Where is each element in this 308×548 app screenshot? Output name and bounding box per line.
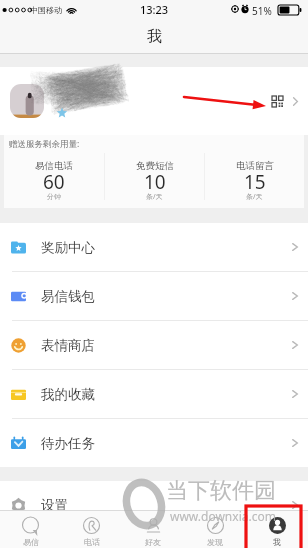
staticText: 奖励中心	[41, 239, 95, 256]
staticText: 13:23	[140, 2, 169, 17]
staticText: 易信电话	[35, 160, 73, 172]
staticText: www.downxia.com	[170, 508, 276, 524]
button[interactable]: QR code	[0, 67, 308, 135]
button[interactable]: QR code	[272, 96, 283, 107]
staticText: 条/天	[146, 192, 163, 202]
button[interactable]: 易信	[0, 511, 61, 548]
staticText: 赠送服务剩余用量:	[9, 138, 80, 150]
button[interactable]: 易信电话	[4, 150, 104, 208]
button[interactable]: 免费短信	[105, 150, 204, 208]
staticText: 15	[244, 169, 266, 195]
staticText: 条/天	[246, 192, 263, 202]
button[interactable]: 设置	[0, 481, 308, 529]
button[interactable]: 表情商店	[0, 321, 308, 369]
staticText: 分钟	[47, 192, 61, 201]
staticText: 发现	[207, 537, 223, 547]
staticText: 51%	[252, 4, 272, 18]
staticText: 当下软件园	[166, 477, 276, 505]
button[interactable]: 奖励中心	[0, 223, 308, 271]
staticText: 10	[144, 169, 166, 195]
button[interactable]: 我	[246, 511, 308, 548]
button[interactable]: 关于易信	[0, 530, 308, 548]
staticText: 易信钱包	[41, 288, 95, 305]
button[interactable]: 发现	[184, 511, 246, 548]
staticText: 免费短信	[136, 160, 174, 172]
button[interactable]: 待办任务	[0, 419, 308, 467]
staticText: 我	[147, 27, 162, 46]
button[interactable]: 易信钱包	[0, 272, 308, 320]
button[interactable]: 电话	[61, 511, 122, 548]
staticText: 我	[273, 537, 281, 547]
button[interactable]: 电话留言	[205, 150, 304, 208]
staticText: 好友	[145, 537, 161, 547]
staticText: 我的收藏	[41, 386, 95, 403]
button[interactable]: 我的收藏	[0, 370, 308, 418]
staticText: 设置	[41, 497, 68, 514]
staticText: 中国移动	[30, 5, 62, 15]
staticText: 表情商店	[41, 337, 95, 354]
staticText: 关于易信	[41, 531, 95, 548]
button[interactable]: 好友	[122, 511, 184, 548]
staticText: 60	[43, 169, 65, 195]
staticText: 电话	[84, 537, 100, 547]
staticText: 待办任务	[41, 435, 95, 452]
staticText: 易信	[23, 537, 39, 547]
staticText: 电话留言	[236, 160, 274, 172]
